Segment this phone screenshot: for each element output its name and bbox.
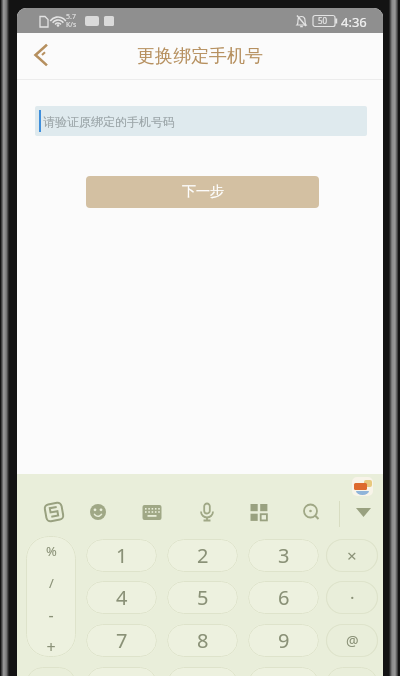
staticText: 5 — [197, 584, 209, 611]
button[interactable]: 4 — [86, 581, 157, 614]
staticText: 8 — [197, 627, 209, 654]
button[interactable]: × — [326, 539, 378, 572]
staticText: 2 — [197, 542, 209, 569]
button[interactable] — [26, 536, 76, 657]
button[interactable]: 下一步 — [86, 176, 319, 208]
button[interactable] — [35, 493, 73, 531]
button[interactable] — [167, 667, 238, 676]
staticText: + — [46, 636, 56, 658]
button[interactable] — [79, 493, 117, 531]
button[interactable] — [133, 493, 171, 531]
staticText: - — [48, 604, 54, 626]
button[interactable]: 6 — [248, 581, 319, 614]
button[interactable]: 7 — [86, 624, 157, 657]
button[interactable] — [188, 493, 226, 531]
button[interactable] — [86, 667, 157, 676]
staticText: % — [46, 542, 57, 560]
staticText: 4 — [116, 584, 128, 611]
staticText: · — [350, 586, 355, 609]
button[interactable] — [248, 667, 319, 676]
button[interactable]: 5 — [167, 581, 238, 614]
staticText: 1 — [116, 542, 128, 569]
button[interactable] — [240, 493, 278, 531]
button[interactable]: 请验证原绑定的手机号码 — [35, 106, 367, 136]
button[interactable] — [292, 493, 330, 531]
button[interactable]: 8 — [167, 624, 238, 657]
staticText: 请验证原绑定的手机号码 — [43, 114, 175, 129]
button[interactable] — [352, 477, 373, 496]
staticText: × — [347, 544, 357, 567]
staticText: K/s — [66, 20, 77, 30]
staticText: 7 — [116, 627, 128, 654]
button[interactable]: @ — [326, 624, 378, 657]
button[interactable]: 9 — [248, 624, 319, 657]
staticText: 下一步 — [182, 183, 224, 201]
staticText: 6 — [278, 584, 290, 611]
button[interactable] — [21, 35, 61, 75]
staticText: / — [49, 574, 54, 592]
staticText: 4:36 — [341, 13, 367, 31]
staticText: 更换绑定手机号 — [137, 45, 263, 68]
staticText: @ — [346, 631, 359, 650]
button[interactable]: 2 — [167, 539, 238, 572]
staticText: 50 — [318, 15, 328, 26]
staticText: 3 — [278, 542, 290, 569]
staticText: 5.7 — [66, 12, 76, 22]
button[interactable] — [326, 667, 378, 676]
button[interactable]: 1 — [86, 539, 157, 572]
button[interactable] — [26, 667, 76, 676]
button[interactable] — [347, 496, 379, 528]
button[interactable]: 3 — [248, 539, 319, 572]
staticText: 9 — [278, 627, 290, 654]
button[interactable]: · — [326, 581, 378, 614]
